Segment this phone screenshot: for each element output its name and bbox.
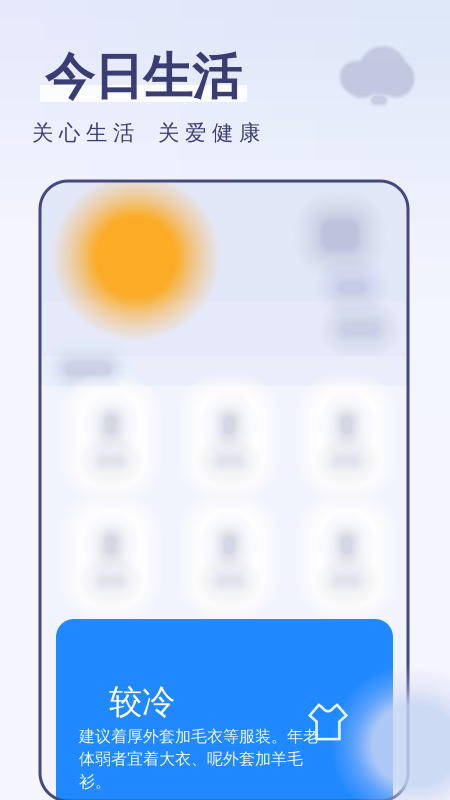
- staticText: 较冷: [109, 681, 175, 722]
- staticText: 建议着厚外套加毛衣等服装。年老: [79, 726, 319, 746]
- staticText: 关 心 生 活 关 爱 健 康: [32, 120, 260, 146]
- button[interactable]: 较冷: [56, 619, 393, 800]
- staticText: 今日生活: [45, 47, 241, 107]
- staticText: 衫。: [79, 772, 111, 791]
- staticText: 体弱者宜着大衣、呢外套加羊毛: [79, 749, 303, 769]
